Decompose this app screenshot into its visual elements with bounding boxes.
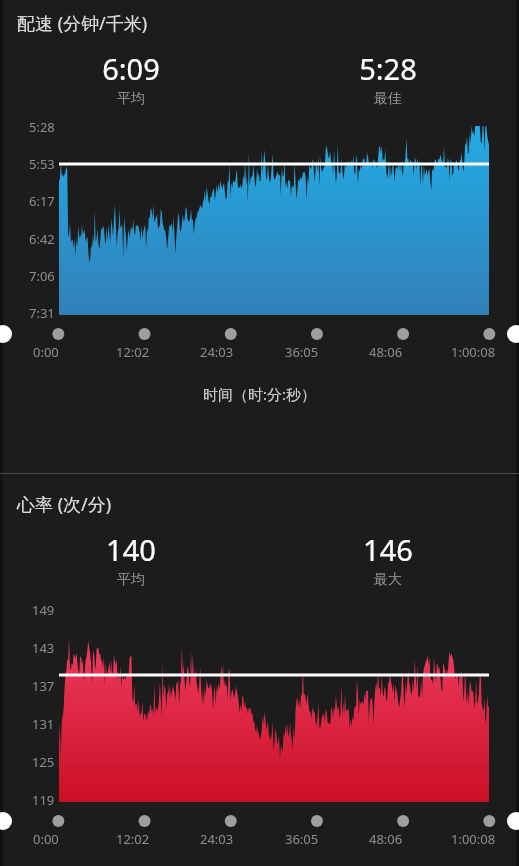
staticText: 12:02 xyxy=(116,830,150,848)
staticText: 36:05 xyxy=(285,343,319,361)
staticText: 平均 xyxy=(117,90,145,108)
staticText: 0:00 xyxy=(33,830,59,848)
staticText: 平均 xyxy=(117,571,145,589)
staticText: 140 xyxy=(106,530,156,569)
staticText: 149 xyxy=(32,601,55,619)
staticText: 6:09 xyxy=(102,49,160,88)
button[interactable]: 心率 (次/分) xyxy=(3,474,516,866)
staticText: 最佳 xyxy=(374,90,402,108)
staticText: 6:42 xyxy=(29,230,55,248)
staticText: 心率 (次/分) xyxy=(17,492,112,517)
staticText: 0:00 xyxy=(33,343,59,361)
staticText: 24:03 xyxy=(200,343,234,361)
staticText: 5:53 xyxy=(29,155,55,173)
button[interactable]: 配速 (分钟/千米) xyxy=(3,0,516,473)
staticText: 146 xyxy=(363,530,413,569)
staticText: 7:31 xyxy=(29,304,55,322)
staticText: 125 xyxy=(32,753,55,771)
staticText: 7:06 xyxy=(29,267,55,285)
staticText: 119 xyxy=(32,791,55,809)
staticText: 5:28 xyxy=(29,118,55,136)
staticText: 131 xyxy=(32,715,55,733)
staticText: 时间（时:分:秒） xyxy=(203,384,317,404)
staticText: 6:17 xyxy=(29,192,55,210)
staticText: 143 xyxy=(32,639,55,657)
staticText: 48:06 xyxy=(369,830,403,848)
staticText: 36:05 xyxy=(285,830,319,848)
staticText: 1:00:08 xyxy=(451,830,496,848)
staticText: 1:00:08 xyxy=(451,343,496,361)
staticText: 24:03 xyxy=(200,830,234,848)
staticText: 配速 (分钟/千米) xyxy=(17,11,148,36)
staticText: 137 xyxy=(32,677,55,695)
staticText: 48:06 xyxy=(369,343,403,361)
staticText: 最大 xyxy=(374,571,402,589)
staticText: 5:28 xyxy=(359,49,417,88)
staticText: 12:02 xyxy=(116,343,150,361)
